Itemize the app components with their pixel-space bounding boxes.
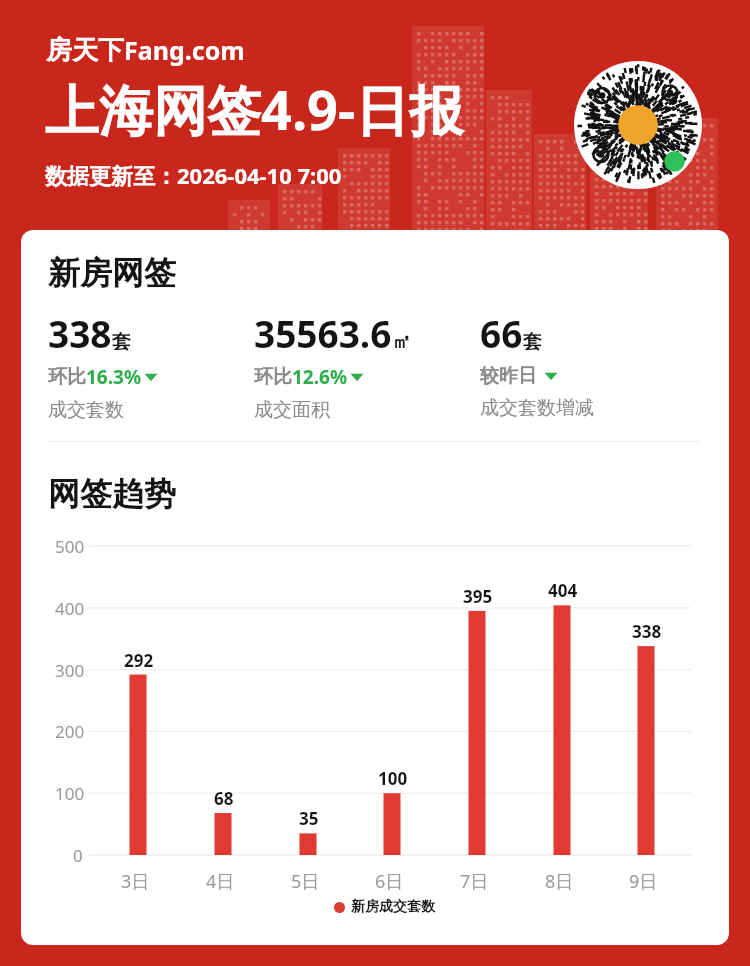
staticText: 环比 [254, 365, 292, 389]
staticText: 3日 [121, 869, 150, 894]
staticText: 网签趋势 [48, 474, 176, 514]
staticText: 新房成交套数 [351, 898, 435, 916]
staticText: 292 [124, 649, 154, 672]
staticText: 6日 [375, 869, 404, 894]
staticText: 0 [73, 844, 83, 867]
staticText: 4日 [206, 869, 235, 894]
staticText: 7日 [460, 869, 489, 894]
staticText: 35 [299, 807, 319, 830]
button[interactable]: 扫码进入小程序 [574, 61, 702, 189]
staticText: 9日 [629, 869, 658, 894]
button[interactable]: 66 [480, 308, 594, 420]
staticText: 68 [214, 787, 234, 810]
staticText: 300 [55, 659, 85, 682]
staticText: 成交套数 [48, 398, 124, 422]
staticText: 较昨日 [480, 364, 537, 388]
staticText: 100 [55, 782, 85, 805]
staticText: ㎡ [392, 330, 411, 354]
staticText: 400 [55, 597, 85, 620]
staticText: 100 [378, 767, 408, 790]
staticText: 338 [48, 308, 112, 358]
staticText: Fang.com [124, 33, 245, 67]
staticText: 66 [480, 308, 523, 358]
staticText: 16.3% [86, 364, 142, 390]
staticText: 35563.6 [254, 308, 392, 358]
staticText: 数据更新至：2026-04-10 7:00 [45, 160, 342, 190]
staticText: 成交面积 [254, 398, 330, 422]
staticText: 套 [523, 330, 542, 354]
button[interactable]: 338 [48, 308, 158, 422]
staticText: 500 [55, 535, 85, 558]
staticText: 12.6% [292, 364, 348, 390]
staticText: 338 [632, 620, 662, 643]
staticText: 395 [463, 585, 493, 608]
staticText: 成交套数增减 [480, 396, 594, 420]
staticText: 8日 [545, 869, 574, 894]
staticText: 5日 [291, 869, 320, 894]
staticText: 环比 [48, 365, 86, 389]
staticText: 房天下 [46, 34, 124, 67]
staticText: 404 [548, 579, 578, 602]
button[interactable]: 35563.6 [254, 308, 411, 422]
staticText: 上海网签4.9-日报 [45, 72, 464, 146]
button[interactable]: 新房成交套数 [334, 898, 435, 916]
staticText: 套 [112, 330, 131, 354]
staticText: 新房网签 [48, 253, 176, 293]
staticText: 200 [55, 720, 85, 743]
button[interactable]: 房天下 Fang.com [46, 33, 245, 67]
